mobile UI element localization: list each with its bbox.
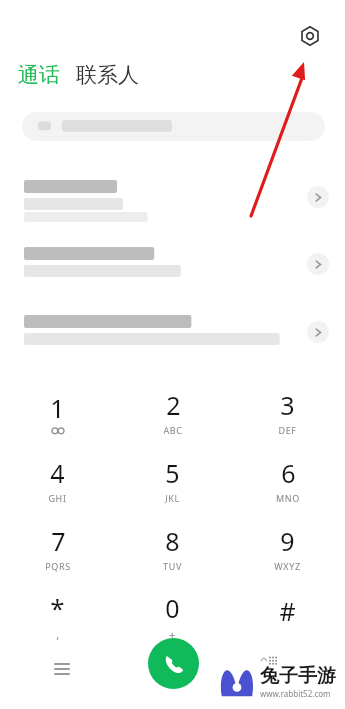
- button[interactable]: Call details: [307, 253, 329, 275]
- staticText: www.rabbit52.com: [260, 688, 331, 699]
- button[interactable]: *: [0, 582, 115, 650]
- button[interactable]: Call details: [0, 168, 345, 226]
- staticText: 兔子手游: [260, 664, 336, 688]
- staticText: WXYZ: [274, 560, 301, 572]
- button[interactable]: 通话: [16, 60, 62, 90]
- button[interactable]: #: [230, 582, 345, 650]
- staticText: 1: [50, 391, 65, 425]
- staticText: ABC: [163, 424, 183, 436]
- staticText: 联系人: [76, 62, 139, 88]
- button[interactable]: 8: [115, 514, 230, 582]
- button[interactable]: [22, 112, 325, 141]
- button[interactable]: 6: [230, 446, 345, 514]
- button[interactable]: 1: [0, 378, 115, 446]
- staticText: JKL: [165, 492, 180, 504]
- button[interactable]: 4: [0, 446, 115, 514]
- button[interactable]: 联系人: [74, 60, 141, 90]
- button[interactable]: Settings: [292, 18, 328, 54]
- staticText: 3: [280, 388, 295, 422]
- staticText: PQRS: [45, 560, 71, 572]
- staticText: 7: [51, 524, 66, 558]
- button[interactable]: 0: [115, 582, 230, 650]
- staticText: 9: [280, 524, 295, 558]
- button[interactable]: 7: [0, 514, 115, 582]
- staticText: GHI: [48, 492, 67, 504]
- staticText: 0: [165, 591, 180, 625]
- button[interactable]: Menu: [42, 648, 82, 688]
- staticText: 8: [165, 524, 180, 558]
- staticText: 5: [165, 456, 180, 490]
- button[interactable]: Call details: [307, 186, 329, 208]
- button[interactable]: 2: [115, 378, 230, 446]
- staticText: 4: [50, 456, 65, 490]
- staticText: 2: [166, 388, 181, 422]
- staticText: ,: [56, 627, 60, 642]
- staticText: DEF: [278, 424, 297, 436]
- staticText: +: [169, 627, 176, 642]
- staticText: #: [279, 594, 296, 628]
- button[interactable]: Call: [148, 638, 199, 689]
- button[interactable]: More options: [252, 645, 288, 681]
- button[interactable]: Call details: [0, 303, 345, 361]
- button[interactable]: 5: [115, 446, 230, 514]
- button[interactable]: Call details: [307, 321, 329, 343]
- staticText: MNO: [276, 492, 300, 504]
- button[interactable]: Call details: [0, 235, 345, 293]
- staticText: TUV: [163, 560, 182, 572]
- button[interactable]: 9: [230, 514, 345, 582]
- button[interactable]: 3: [230, 378, 345, 446]
- staticText: *: [50, 590, 65, 625]
- staticText: 6: [281, 456, 296, 490]
- staticText: 通话: [18, 62, 60, 88]
